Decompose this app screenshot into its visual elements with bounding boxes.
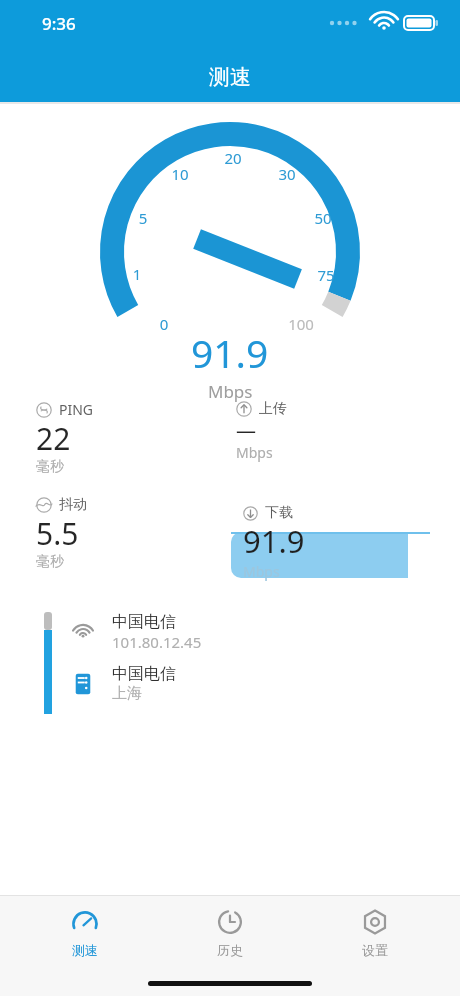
staticText: 30 [274, 164, 300, 184]
staticText: Mbps [243, 562, 280, 581]
staticText: 抖动 [59, 496, 87, 514]
staticText: 0 [151, 314, 177, 334]
staticText: 50 [310, 208, 336, 228]
button[interactable]: PING [36, 400, 94, 478]
staticText: Mbps [208, 380, 253, 403]
staticText: 10 [167, 164, 193, 184]
staticText: 中国电信 [112, 664, 176, 684]
staticText: 上海 [112, 684, 142, 703]
staticText: 毫秒 [36, 553, 64, 571]
staticText: 91.9 [191, 326, 269, 379]
button[interactable]: 设置 [315, 906, 435, 958]
staticText: 9:36 [42, 12, 76, 35]
staticText: 5 [130, 208, 156, 228]
staticText: 100 [286, 314, 316, 334]
staticText: 测速 [209, 64, 251, 90]
button[interactable]: 中国电信 [44, 612, 202, 714]
staticText: 历史 [217, 942, 243, 958]
button[interactable]: 测速 [25, 906, 145, 958]
button[interactable]: 抖动 [36, 496, 87, 573]
staticText: 5.5 [36, 513, 79, 554]
staticText: 测速 [72, 942, 98, 958]
button[interactable]: 历史 [170, 906, 290, 958]
staticText: 下载 [265, 504, 293, 522]
staticText: 91.9 [243, 520, 305, 562]
button[interactable]: 下载 [231, 494, 430, 590]
button[interactable]: 上传 [236, 400, 287, 464]
staticText: 75 [313, 265, 339, 285]
staticText: 设置 [362, 942, 388, 958]
staticText: 上传 [259, 400, 287, 418]
staticText: 20 [220, 148, 246, 168]
staticText: Mbps [236, 443, 273, 462]
staticText: 22 [36, 418, 71, 459]
staticText: PING [59, 400, 94, 419]
staticText: — [236, 417, 256, 444]
staticText: 101.80.12.45 [112, 632, 202, 652]
staticText: 毫秒 [36, 458, 64, 476]
staticText: 中国电信 [112, 612, 176, 632]
staticText: 1 [124, 264, 150, 284]
